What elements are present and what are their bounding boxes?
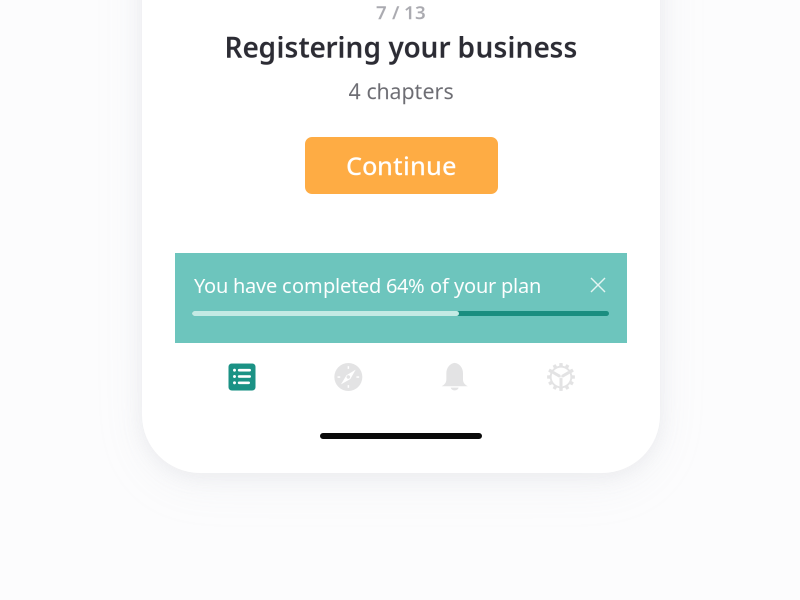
staticText: 7 / 13 bbox=[376, 0, 426, 24]
button[interactable]: Explore bbox=[316, 352, 380, 402]
button[interactable]: Continue bbox=[305, 137, 498, 194]
staticText: Registering your business bbox=[224, 28, 577, 66]
button[interactable]: Settings bbox=[529, 352, 593, 402]
staticText: Continue bbox=[346, 149, 457, 182]
button[interactable]: Notifications bbox=[423, 352, 487, 402]
staticText: 4 chapters bbox=[348, 77, 453, 105]
staticText: You have completed 64% of your plan bbox=[194, 272, 541, 299]
button[interactable]: Dismiss bbox=[580, 267, 616, 303]
button[interactable]: My plan bbox=[210, 352, 274, 402]
